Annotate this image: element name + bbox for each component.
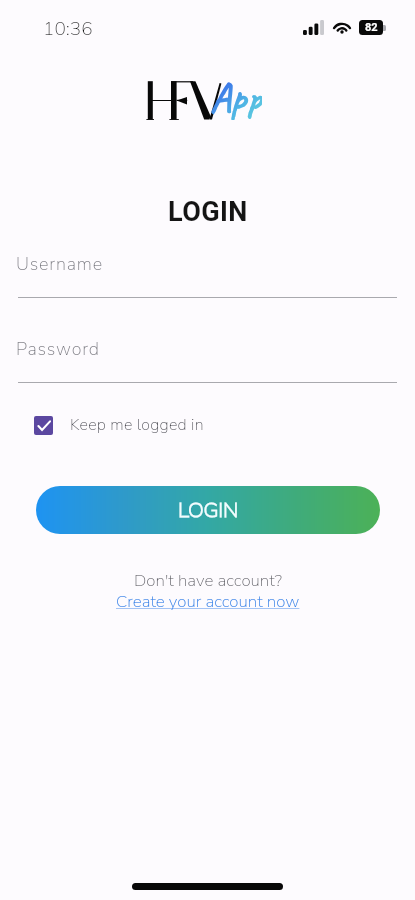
button[interactable]: LOGIN <box>36 486 380 534</box>
staticText: Username <box>16 252 103 277</box>
staticText: App <box>210 72 262 120</box>
staticText: 10:36 <box>43 16 93 42</box>
button[interactable]: Keep me logged in <box>34 414 204 436</box>
staticText: LOGIN <box>168 196 248 228</box>
button[interactable]: Password <box>18 325 397 383</box>
staticText: Password <box>16 337 100 362</box>
other: Wi-Fi <box>332 20 352 34</box>
staticText: LOGIN <box>178 496 238 525</box>
button[interactable]: Username <box>18 240 397 298</box>
staticText: Keep me logged in <box>70 414 204 436</box>
staticText: 82 <box>365 21 378 34</box>
staticText: Don't have account? <box>134 569 282 592</box>
button[interactable]: Create your account now <box>116 590 300 613</box>
other: Battery 82 percent <box>359 20 383 35</box>
other: Cellular signal <box>303 20 324 35</box>
